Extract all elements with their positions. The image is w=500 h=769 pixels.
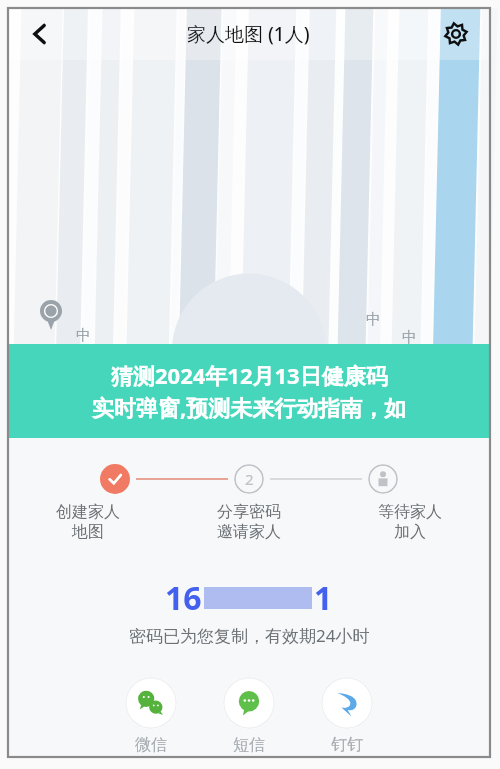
button[interactable]: 短信 — [213, 677, 285, 755]
button[interactable]: 2 — [234, 464, 264, 494]
staticText: 等待家人 — [378, 502, 442, 522]
staticText: 1 — [314, 576, 333, 620]
staticText: 中 — [366, 310, 381, 329]
button[interactable]: 16 — [8, 576, 490, 647]
button[interactable]: Waiting for family — [368, 464, 398, 494]
button[interactable]: Settings — [434, 12, 478, 56]
staticText: 猜测2024年12月13日健康码 — [111, 360, 388, 390]
button[interactable]: 钉钉 — [311, 677, 383, 755]
staticText: 钉钉 — [331, 735, 363, 755]
staticText: 中 — [76, 326, 91, 345]
button[interactable]: 创建家人 — [8, 502, 168, 542]
staticText: 16 — [165, 576, 202, 620]
staticText: 加入 — [394, 522, 426, 542]
staticText: 2 — [245, 469, 254, 489]
staticText: 邀请家人 — [217, 522, 281, 542]
staticText: 创建家人 — [56, 502, 120, 522]
button[interactable]: 分享密码 — [168, 502, 329, 542]
staticText: 密码已为您复制，有效期24小时 — [129, 624, 370, 647]
staticText: 中 — [402, 328, 417, 347]
button[interactable]: Step 1 completed — [100, 464, 130, 494]
button[interactable]: 微信 — [115, 677, 187, 755]
button[interactable]: 等待家人 — [329, 502, 490, 542]
staticText: 分享密码 — [217, 502, 281, 522]
staticText: 微信 — [135, 735, 167, 755]
staticText: 家人地图 (1人) — [187, 21, 310, 47]
button[interactable]: Back — [18, 12, 62, 56]
staticText: 地图 — [72, 522, 104, 542]
staticText: 短信 — [233, 735, 265, 755]
staticText: 实时弹窗,预测未来行动指南，如 — [92, 392, 407, 422]
